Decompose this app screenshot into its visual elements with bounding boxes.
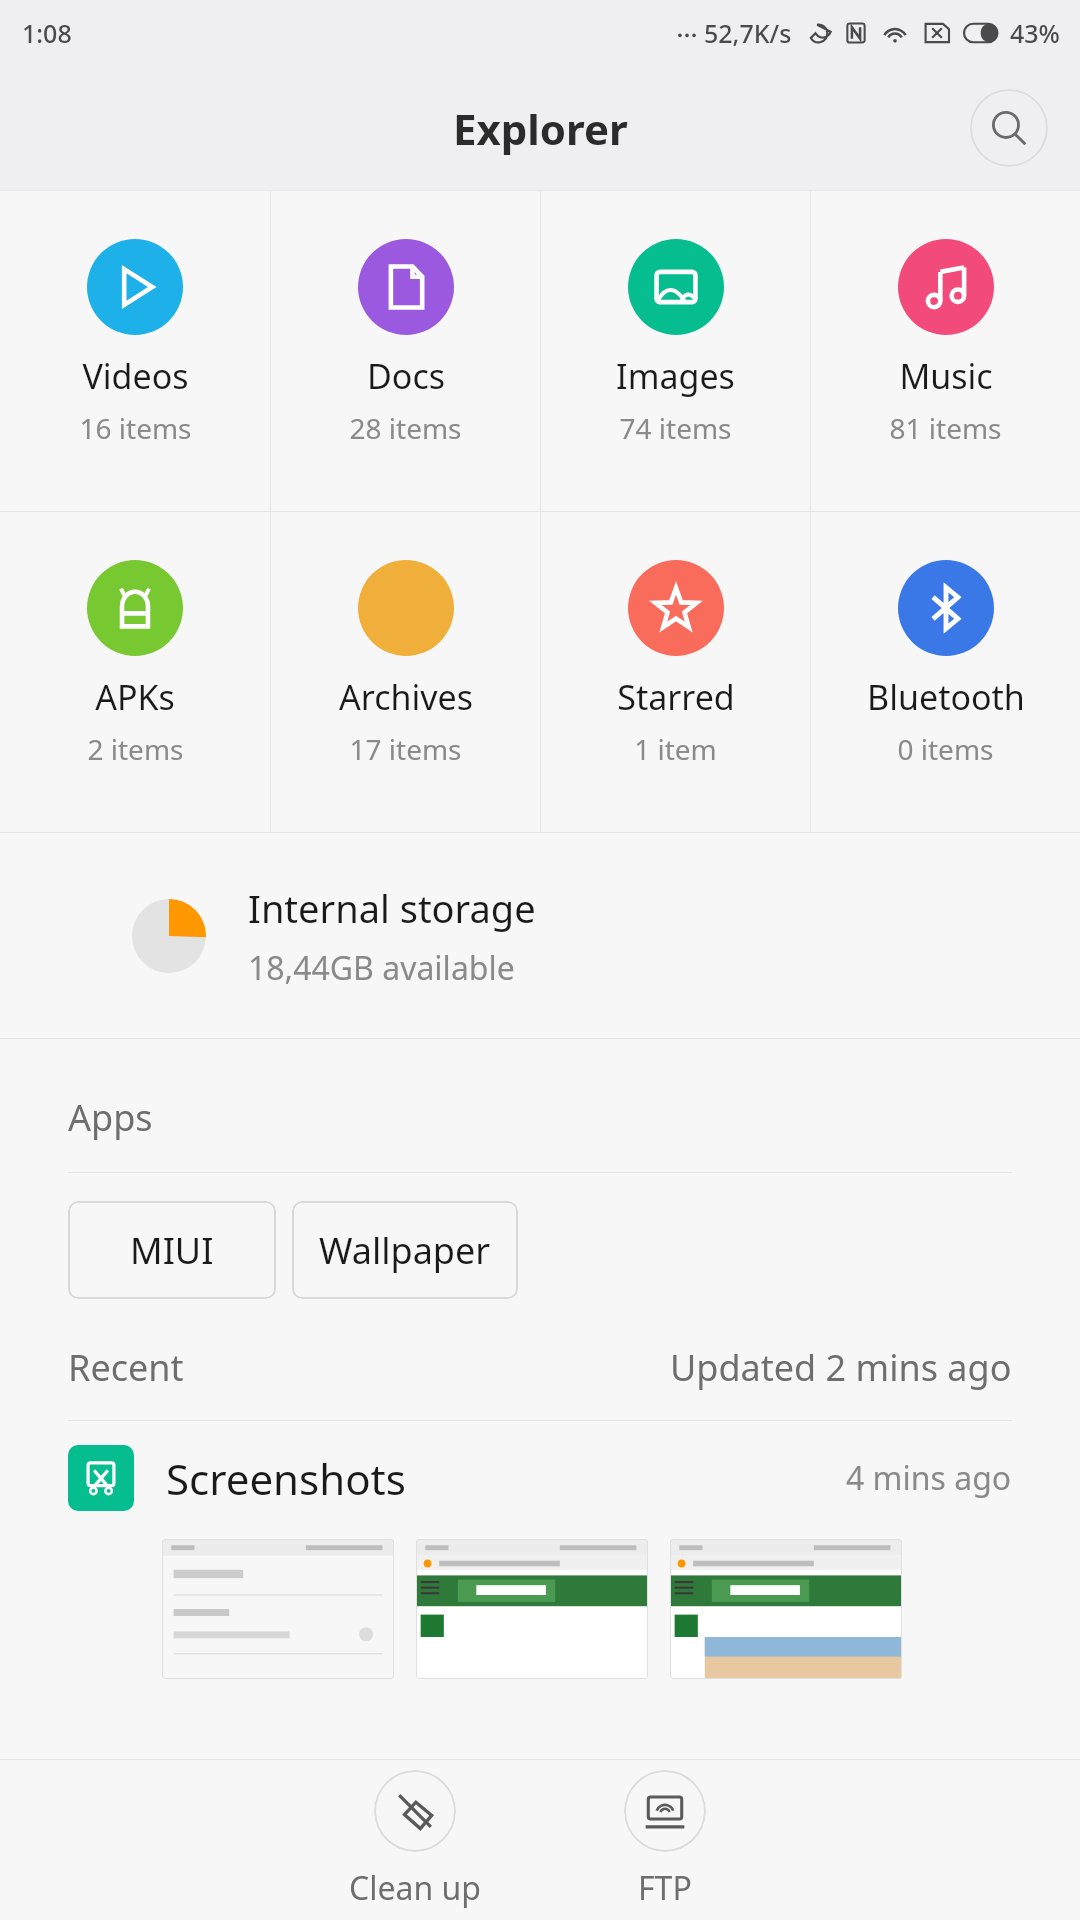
staticText: 17 items: [349, 730, 462, 768]
staticText: Updated 2 mins ago: [670, 1343, 1012, 1392]
button[interactable]: MIUI: [68, 1201, 276, 1299]
staticText: MIUI: [130, 1226, 214, 1275]
staticText: 1:08: [22, 16, 72, 50]
staticText: APKs: [95, 674, 175, 720]
button[interactable]: Internal storage: [0, 833, 1080, 1038]
staticText: 52,7K/s: [704, 16, 792, 50]
button[interactable]: APKs: [0, 512, 270, 832]
staticText: 0 items: [897, 730, 994, 768]
staticText: 81 items: [889, 409, 1002, 447]
staticText: Bluetooth: [867, 674, 1025, 720]
button[interactable]: Screenshot thumbnail: [416, 1539, 648, 1679]
button[interactable]: Screenshots: [68, 1445, 1012, 1511]
staticText: 43%: [1010, 16, 1060, 50]
staticText: 18,44GB available: [248, 946, 515, 990]
button[interactable]: Music: [811, 191, 1080, 511]
staticText: Apps: [68, 1093, 153, 1142]
staticText: FTP: [638, 1866, 692, 1910]
staticText: 2 items: [87, 730, 184, 768]
staticText: Wallpaper: [319, 1226, 491, 1275]
staticText: Docs: [367, 353, 445, 399]
button[interactable]: Starred: [541, 512, 810, 832]
button[interactable]: Images: [541, 191, 810, 511]
staticText: Screenshots: [166, 1450, 406, 1507]
button[interactable]: Wallpaper: [292, 1201, 518, 1299]
staticText: Starred: [617, 674, 735, 720]
button[interactable]: Screenshot thumbnail: [670, 1539, 902, 1679]
staticText: Explorer: [453, 100, 628, 157]
button[interactable]: Archives: [271, 512, 540, 832]
staticText: 4 mins ago: [846, 1456, 1012, 1500]
button[interactable]: FTP: [565, 1770, 765, 1910]
staticText: 16 items: [79, 409, 192, 447]
staticText: Internal storage: [248, 882, 536, 934]
staticText: Recent: [68, 1343, 184, 1392]
staticText: Images: [616, 353, 735, 399]
staticText: 28 items: [349, 409, 462, 447]
button[interactable]: Screenshot thumbnail: [162, 1539, 394, 1679]
staticText: 74 items: [619, 409, 732, 447]
button[interactable]: Bluetooth: [811, 512, 1080, 832]
staticText: Archives: [339, 674, 473, 720]
button[interactable]: Clean up: [315, 1770, 515, 1910]
button[interactable]: Videos: [0, 191, 270, 511]
staticText: Clean up: [349, 1866, 482, 1910]
staticText: Music: [899, 353, 993, 399]
button[interactable]: Docs: [271, 191, 540, 511]
staticText: 1 item: [634, 730, 717, 768]
button[interactable]: Search: [970, 89, 1048, 167]
staticText: Videos: [82, 353, 189, 399]
